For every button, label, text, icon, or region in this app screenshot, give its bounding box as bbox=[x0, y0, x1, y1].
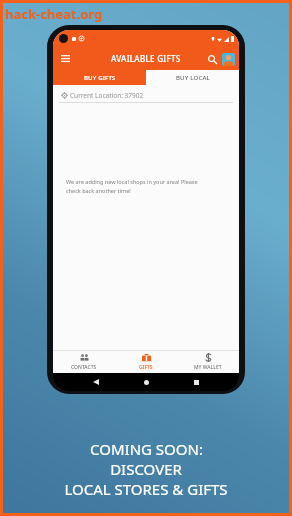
button[interactable]: Menu bbox=[57, 50, 74, 67]
button[interactable]: BUY LOCAL bbox=[146, 70, 239, 85]
staticText: BUY LOCAL bbox=[176, 74, 210, 82]
staticText: COMING SOON: bbox=[90, 439, 203, 459]
button[interactable]: Profile bbox=[222, 53, 235, 66]
button[interactable]: MY WALLET bbox=[177, 351, 239, 373]
staticText: DISCOVER bbox=[110, 459, 182, 479]
staticText: Current Location: 37902 bbox=[70, 91, 144, 100]
button[interactable]: Search bbox=[204, 51, 220, 67]
button[interactable]: GIFTS bbox=[115, 351, 177, 373]
staticText: hack-cheat.org bbox=[5, 5, 103, 23]
staticText: AVAILABLE GIFTS bbox=[111, 53, 181, 64]
button[interactable]: CONTACTS bbox=[53, 351, 115, 373]
button[interactable]: Home bbox=[139, 375, 153, 389]
staticText: LOCAL STORES & GIFTS bbox=[64, 479, 228, 499]
button[interactable]: Back bbox=[89, 375, 103, 389]
staticText: GIFTS bbox=[139, 364, 153, 371]
staticText: BUY GIFTS bbox=[84, 74, 116, 82]
button[interactable]: Current Location: 37902 bbox=[53, 89, 239, 101]
button[interactable]: Recents bbox=[189, 375, 203, 389]
staticText: CONTACTS bbox=[71, 364, 97, 371]
button[interactable]: BUY GIFTS bbox=[53, 70, 146, 85]
staticText: MY WALLET bbox=[194, 364, 222, 371]
staticText: We are adding new local shops in your ar… bbox=[66, 178, 213, 195]
